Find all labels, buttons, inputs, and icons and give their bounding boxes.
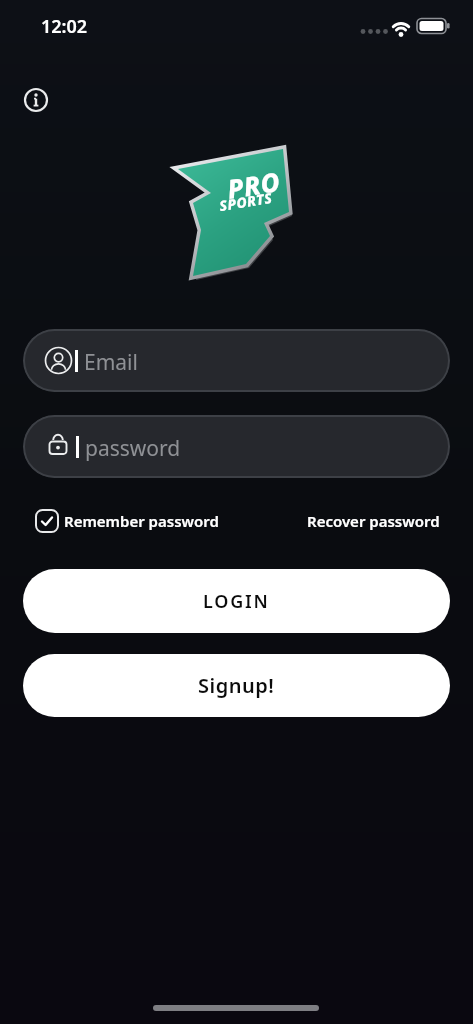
button[interactable] — [22, 86, 50, 114]
staticText: password — [85, 434, 181, 463]
staticText: LOGIN — [203, 589, 270, 614]
button[interactable]: Signup! — [23, 654, 450, 717]
staticText: PRO — [225, 163, 283, 206]
staticText: Signup! — [198, 672, 275, 699]
button[interactable]: LOGIN — [23, 569, 450, 633]
button[interactable]: Remember password — [35, 508, 235, 534]
staticText: SPORTS — [218, 188, 274, 215]
staticText: 12:02 — [41, 14, 88, 39]
staticText: Remember password — [64, 511, 219, 531]
button[interactable] — [23, 415, 450, 478]
button[interactable] — [23, 329, 450, 392]
staticText: Email — [84, 348, 138, 377]
button[interactable]: Recover password — [250, 508, 440, 534]
staticText: Recover password — [307, 511, 440, 531]
